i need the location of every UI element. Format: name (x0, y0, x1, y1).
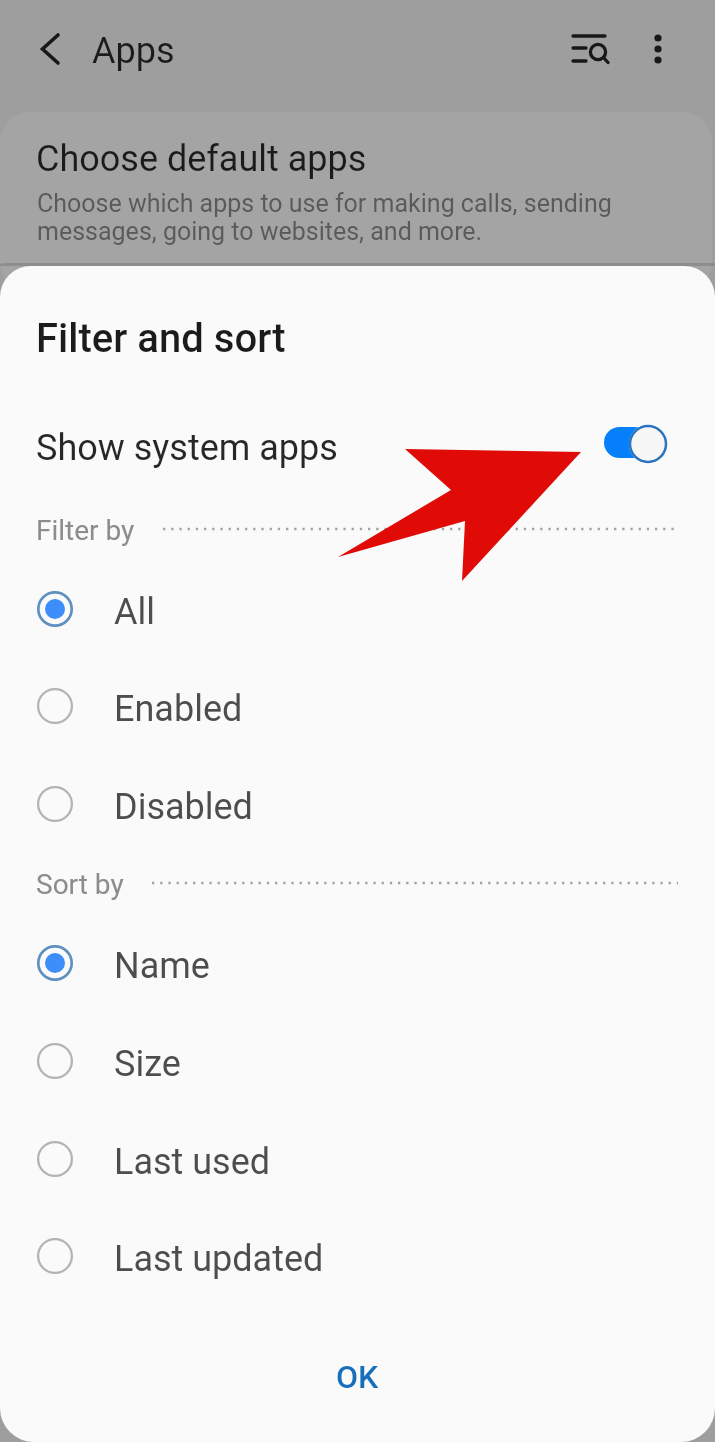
staticText: OK (336, 1358, 379, 1396)
staticText: Show system apps (36, 426, 338, 468)
button[interactable]: Enabled (0, 658, 715, 755)
button[interactable]: Last used (0, 1111, 715, 1208)
staticText: Disabled (114, 785, 253, 827)
staticText: Enabled (114, 687, 243, 729)
staticText: Name (114, 944, 210, 986)
staticText: Last used (114, 1140, 271, 1182)
button[interactable]: Show system apps (0, 396, 715, 492)
button[interactable]: All (0, 561, 715, 658)
button[interactable]: Search (555, 15, 625, 85)
button[interactable] (0, 112, 712, 292)
button[interactable]: Last updated (0, 1208, 715, 1305)
button[interactable]: Size (0, 1013, 715, 1110)
staticText: Choose default apps (36, 137, 367, 179)
staticText: Last updated (114, 1237, 324, 1279)
button[interactable]: Disabled (0, 756, 715, 853)
button[interactable]: Name (0, 915, 715, 1012)
staticText: Size (114, 1042, 181, 1084)
button[interactable]: OK (276, 1342, 439, 1412)
button[interactable]: Navigate up (14, 13, 86, 85)
staticText: Filter by (36, 514, 135, 547)
staticText: Filter and sort (36, 315, 286, 362)
staticText: Apps (92, 29, 175, 71)
button[interactable]: More options (624, 15, 692, 83)
button[interactable]: Show system apps (596, 417, 684, 471)
staticText: All (114, 590, 155, 632)
staticText: Choose which apps to use for making call… (37, 190, 637, 246)
staticText: Sort by (36, 868, 124, 901)
